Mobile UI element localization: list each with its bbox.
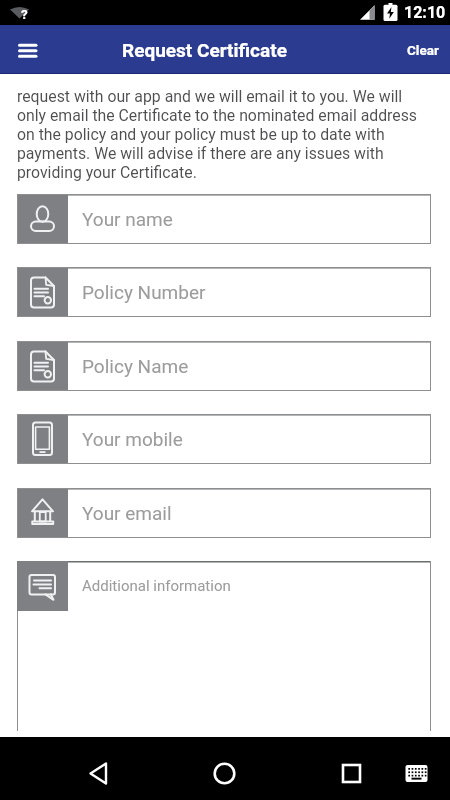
button[interactable]: Your name bbox=[17, 194, 431, 244]
staticText: Policy Name bbox=[82, 355, 189, 377]
staticText: Additional information bbox=[82, 577, 231, 595]
staticText: 12:10 bbox=[404, 3, 446, 22]
button[interactable]: Your mobile bbox=[17, 414, 431, 464]
button[interactable] bbox=[8, 33, 48, 67]
button[interactable] bbox=[75, 752, 119, 796]
button[interactable]: Additional information bbox=[17, 561, 431, 731]
staticText: Your email bbox=[82, 502, 172, 524]
staticText: ? bbox=[21, 6, 28, 22]
button[interactable] bbox=[203, 752, 247, 796]
staticText: Request Certificate bbox=[122, 39, 287, 61]
staticText: Your mobile bbox=[82, 428, 183, 450]
button[interactable] bbox=[395, 752, 439, 796]
button[interactable]: Clear bbox=[418, 42, 450, 58]
button[interactable]: Policy Number bbox=[17, 267, 431, 317]
button[interactable]: Policy Name bbox=[17, 341, 431, 391]
button[interactable]: Your email bbox=[17, 488, 431, 538]
button[interactable] bbox=[329, 752, 373, 796]
staticText: Clear bbox=[407, 42, 439, 58]
staticText: Policy Number bbox=[82, 281, 206, 303]
staticText: Your name bbox=[82, 208, 173, 230]
staticText: request with our app and we will email i… bbox=[17, 87, 437, 187]
